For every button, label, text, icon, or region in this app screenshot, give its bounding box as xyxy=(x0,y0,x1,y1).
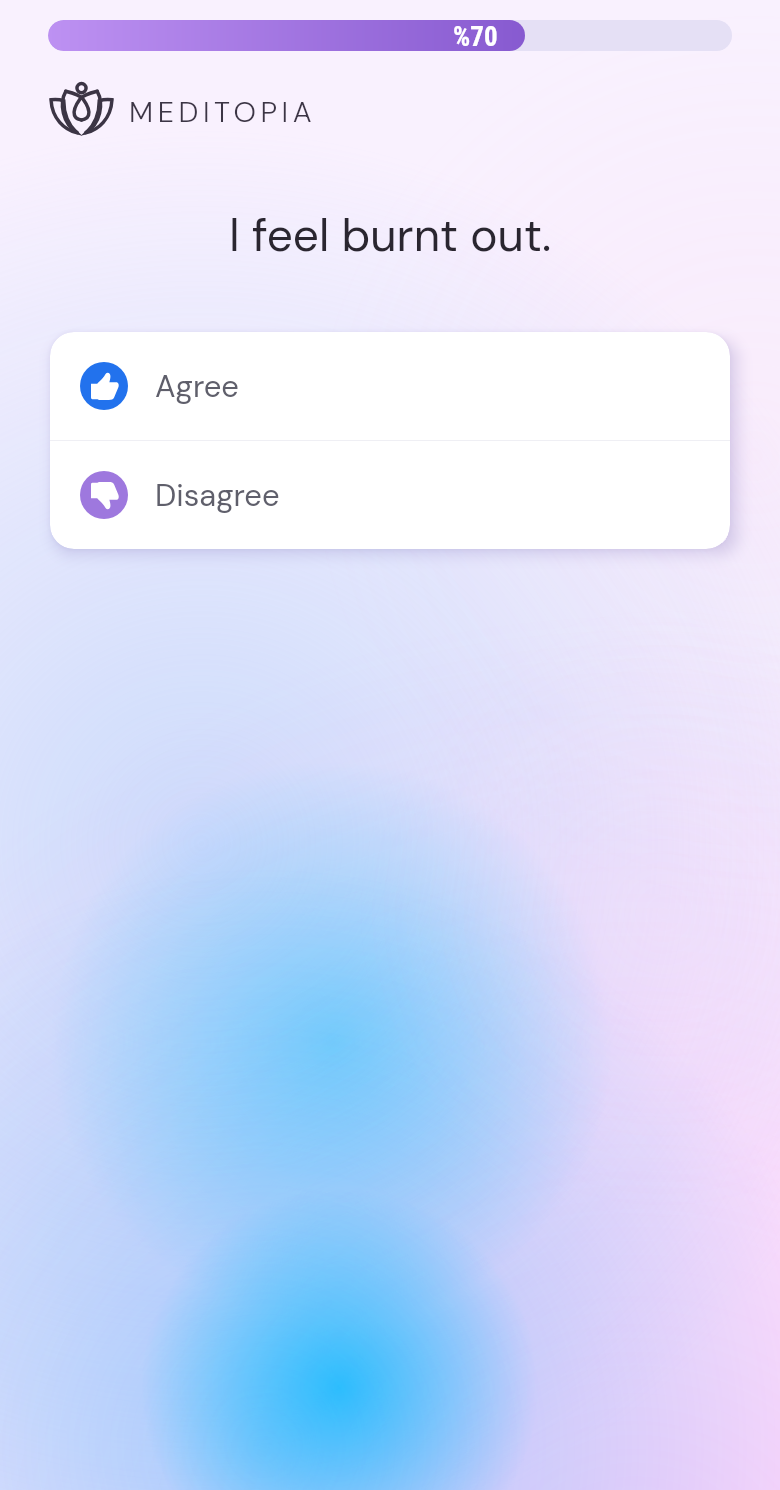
staticText: MEDITOPIA xyxy=(129,93,317,131)
other: Agree xyxy=(80,362,128,410)
staticText: %70 xyxy=(453,21,498,51)
staticText: Disagree xyxy=(155,475,280,515)
staticText: I feel burnt out. xyxy=(229,205,552,265)
button[interactable]: Agree xyxy=(50,332,730,440)
staticText: Agree xyxy=(155,366,239,406)
other: Disagree xyxy=(80,471,128,519)
button[interactable]: Disagree xyxy=(50,441,730,549)
